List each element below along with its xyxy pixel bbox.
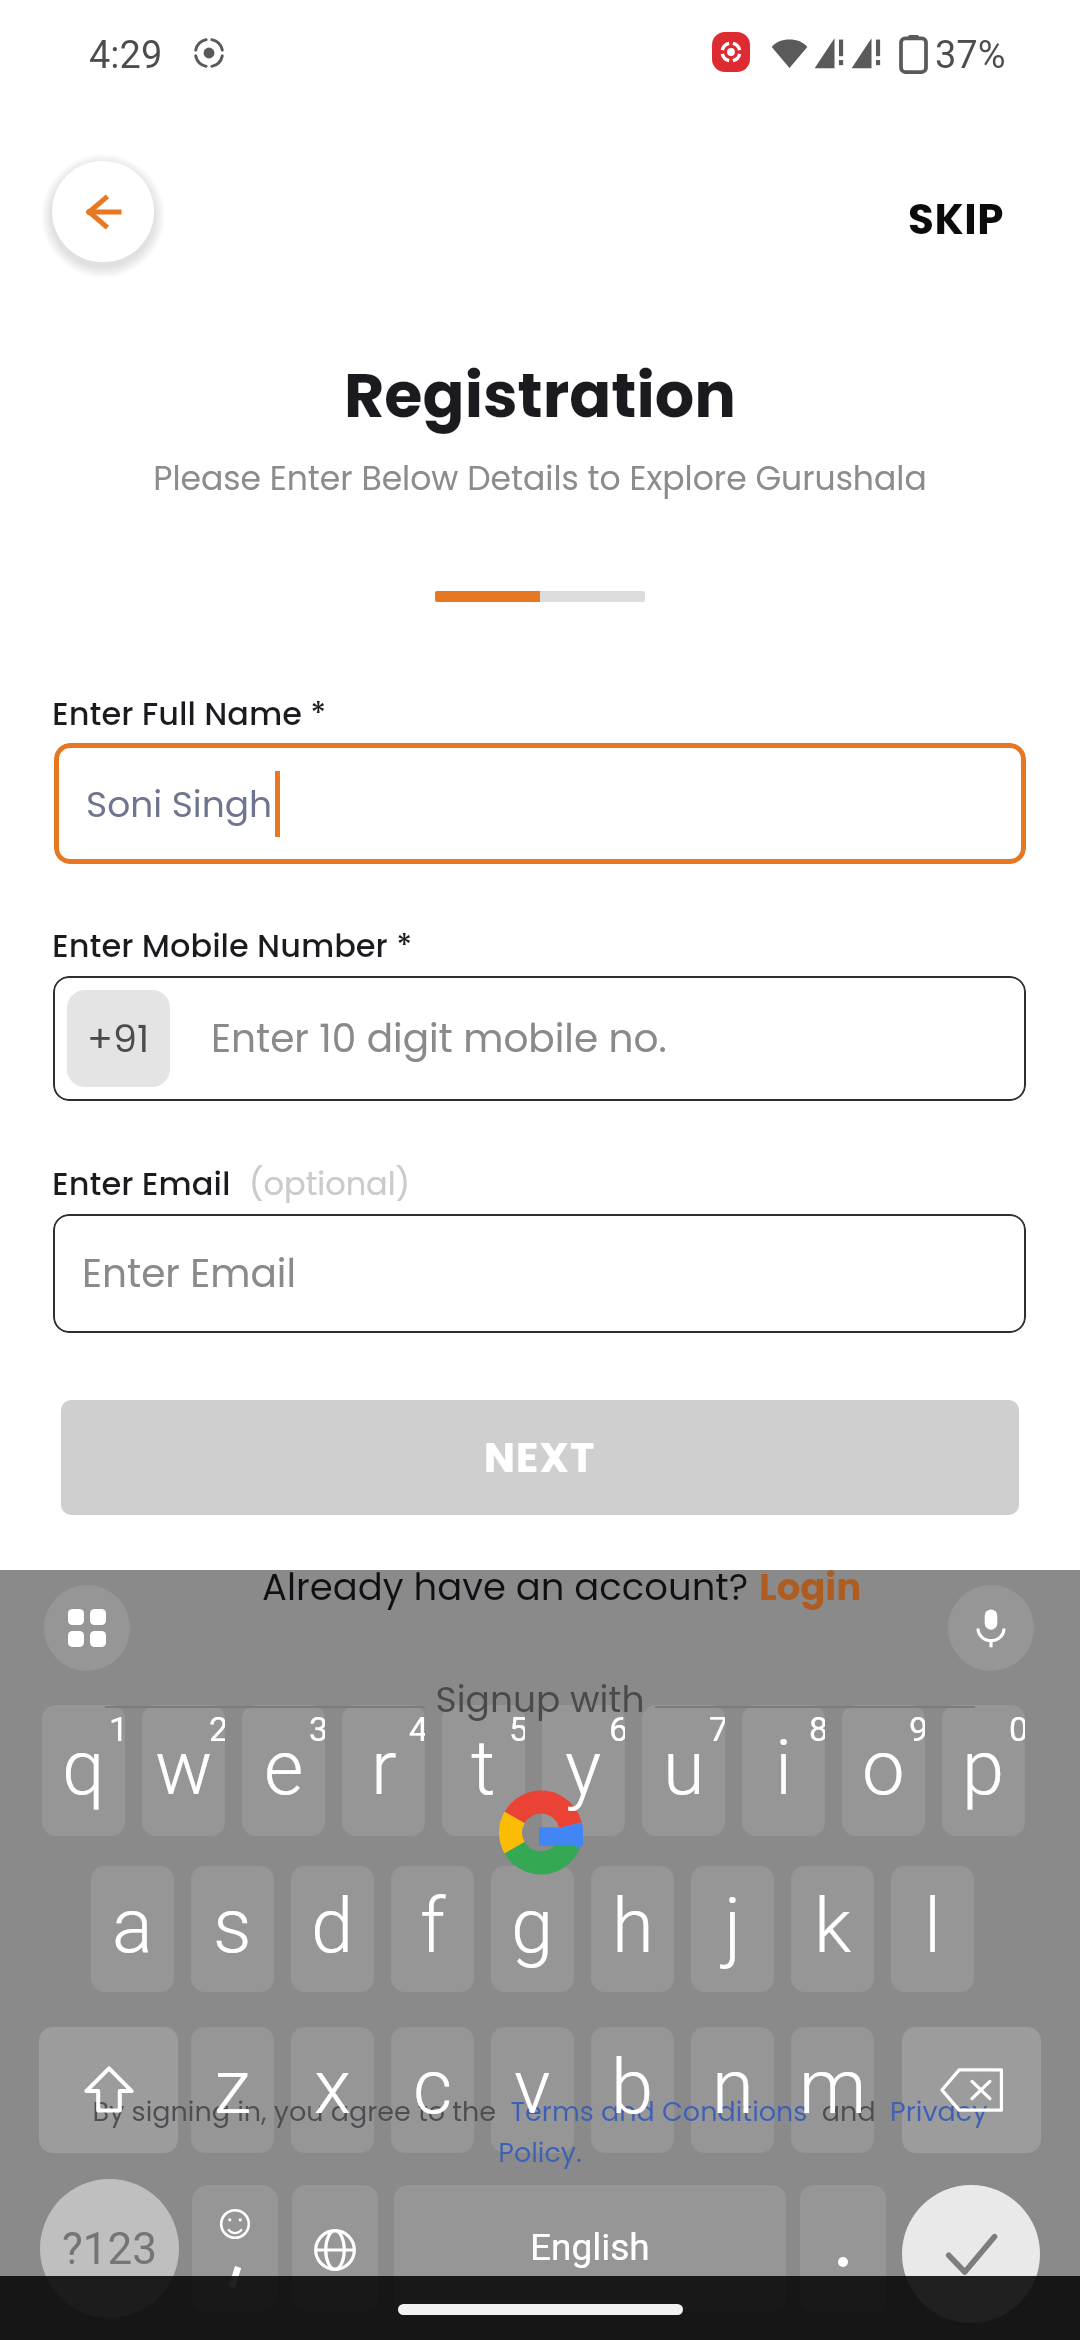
button[interactable]: o (842, 1705, 925, 1836)
button[interactable]: m (791, 2027, 874, 2153)
button[interactable] (191, 2027, 274, 2153)
button[interactable]: c (391, 2027, 474, 2153)
button[interactable]: Login (759, 1561, 862, 1613)
button[interactable] (394, 2185, 786, 2312)
button[interactable] (642, 1705, 725, 1836)
button[interactable]: Soni Singh (54, 743, 1026, 864)
button[interactable]: Enter (902, 2185, 1040, 2323)
staticText: Please Enter Below Details to Explore Gu… (0, 455, 1080, 501)
button[interactable] (491, 1866, 574, 1992)
button[interactable] (800, 2185, 886, 2312)
button[interactable]: Keyboard settings (44, 1585, 130, 1671)
button[interactable]: Enter Email (53, 1214, 1026, 1333)
button[interactable]: b (591, 2027, 674, 2153)
button[interactable] (242, 1705, 325, 1836)
button[interactable] (591, 2027, 674, 2153)
staticText: k (814, 1881, 852, 1970)
staticText: v (514, 2042, 551, 2131)
button[interactable]: Voice input (948, 1585, 1034, 1671)
button[interactable] (391, 2027, 474, 2153)
button[interactable]: Emoji (192, 2185, 278, 2312)
button[interactable]: Keyboard settings (44, 1585, 130, 1671)
button[interactable] (42, 1705, 125, 1836)
staticText: Enter 10 digit mobile no. (211, 1011, 667, 1066)
button[interactable]: k (791, 1866, 874, 1992)
button[interactable]: Voice input (948, 1585, 1034, 1671)
button[interactable]: SKIP (896, 180, 1017, 259)
staticText: f (420, 1881, 446, 1970)
button[interactable] (91, 1866, 174, 1992)
staticText: Enter Mobile Number * (52, 923, 413, 968)
button[interactable]: g (491, 1866, 574, 1992)
button[interactable]: p (942, 1705, 1025, 1836)
button[interactable] (542, 1705, 625, 1836)
button[interactable]: i (742, 1705, 825, 1836)
button[interactable]: f (391, 1866, 474, 1992)
button[interactable]: s (191, 1866, 274, 1992)
staticText: Login (759, 1561, 862, 1613)
button[interactable] (691, 2027, 774, 2153)
button[interactable]: j (691, 1866, 774, 1992)
button[interactable]: ?123 (40, 2179, 179, 2318)
button[interactable] (291, 1866, 374, 1992)
button[interactable]: u (642, 1705, 725, 1836)
button[interactable]: x (291, 2027, 374, 2153)
staticText: m (799, 2042, 867, 2131)
button[interactable]: +91 (53, 976, 1026, 1101)
staticText: Enter Email (82, 1246, 297, 1301)
staticText: w (155, 1723, 213, 1812)
button[interactable] (842, 1705, 925, 1836)
button[interactable]: t (442, 1705, 525, 1836)
button[interactable]: Backspace (902, 2027, 1041, 2153)
button[interactable]: v (491, 2027, 574, 2153)
button[interactable]: r (342, 1705, 425, 1836)
button[interactable]: Emoji (192, 2185, 278, 2312)
button[interactable] (191, 1866, 274, 1992)
button[interactable]: n (691, 2027, 774, 2153)
button[interactable] (942, 1705, 1025, 1836)
button[interactable]: z (191, 2027, 274, 2153)
button[interactable]: Enter (902, 2185, 1040, 2323)
button[interactable]: Shift (39, 2027, 178, 2153)
button[interactable] (40, 2179, 179, 2318)
staticText: 7 (709, 1709, 725, 1749)
button[interactable]: Back (52, 161, 154, 262)
staticText: Already have an account? (262, 1561, 759, 1613)
staticText: u (663, 1723, 705, 1812)
button[interactable]: English (394, 2185, 786, 2312)
button[interactable]: w (142, 1705, 225, 1836)
button[interactable] (391, 1866, 474, 1992)
button[interactable]: Shift (39, 2027, 178, 2153)
button[interactable] (791, 2027, 874, 2153)
button[interactable] (742, 1705, 825, 1836)
button[interactable] (691, 1866, 774, 1992)
button[interactable]: d (291, 1866, 374, 1992)
button[interactable] (891, 1866, 974, 1992)
button[interactable]: Backspace (902, 2027, 1041, 2153)
button[interactable]: a (91, 1866, 174, 1992)
staticText: ?123 (62, 2223, 157, 2275)
button[interactable] (291, 2027, 374, 2153)
staticText: Enter Full Name * (52, 691, 327, 736)
button[interactable] (142, 1705, 225, 1836)
button[interactable]: q (42, 1705, 125, 1836)
staticText: (optional) (249, 1161, 411, 1206)
button[interactable]: Sign up with Google (499, 1789, 583, 1876)
staticText: 0 (1009, 1709, 1025, 1749)
button[interactable]: h (591, 1866, 674, 1992)
button[interactable] (591, 1866, 674, 1992)
button[interactable] (442, 1705, 525, 1836)
staticText: c (413, 2042, 453, 2131)
button[interactable] (791, 1866, 874, 1992)
button[interactable]: l (891, 1866, 974, 1992)
button[interactable]: NEXT (61, 1400, 1019, 1515)
button[interactable]: Change language (292, 2185, 378, 2312)
button[interactable]: e (242, 1705, 325, 1836)
button[interactable] (800, 2185, 886, 2312)
staticText: b (611, 2042, 654, 2131)
button[interactable] (491, 2027, 574, 2153)
button[interactable]: Change language (292, 2185, 378, 2312)
staticText: English (530, 2226, 650, 2269)
button[interactable]: y (542, 1705, 625, 1836)
button[interactable] (342, 1705, 425, 1836)
